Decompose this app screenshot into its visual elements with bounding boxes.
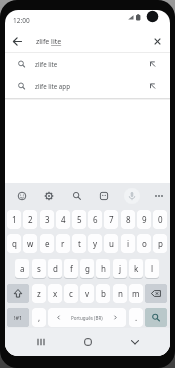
button[interactable] [7, 284, 29, 303]
staticText: a [20, 263, 25, 274]
staticText: n [118, 288, 123, 299]
button[interactable] [13, 187, 31, 205]
button[interactable]: v [80, 284, 94, 303]
staticText: 9 [142, 214, 147, 225]
staticText: i [127, 238, 130, 249]
staticText: f [70, 263, 73, 274]
button[interactable]: 4 [56, 210, 70, 229]
staticText: zlife lite app [35, 82, 70, 90]
button[interactable] [95, 187, 113, 205]
button[interactable] [40, 187, 58, 205]
button[interactable]: z [32, 284, 46, 303]
staticText: l [151, 263, 154, 274]
staticText: 3 [45, 214, 50, 225]
staticText: c [69, 288, 73, 299]
button[interactable] [68, 187, 86, 205]
staticText: t [78, 238, 81, 249]
button[interactable]: 1 [7, 210, 21, 229]
staticText: y [93, 238, 98, 249]
staticText: j [119, 263, 122, 274]
button[interactable]: !#1 [7, 308, 29, 327]
button[interactable]: b [96, 284, 110, 303]
button[interactable]: e [40, 234, 54, 253]
staticText: . [135, 312, 138, 323]
staticText: o [142, 238, 147, 249]
button[interactable]: o [137, 234, 151, 253]
button[interactable]: q [7, 234, 21, 253]
button[interactable]: p [153, 234, 167, 253]
button[interactable]: u [104, 234, 118, 253]
staticText: 0 [158, 214, 163, 225]
button[interactable]: g [80, 259, 94, 278]
button[interactable]: j [113, 259, 127, 278]
button[interactable]: . [129, 308, 143, 327]
button[interactable]: 5 [72, 210, 86, 229]
button[interactable]: 2 [23, 210, 37, 229]
staticText: e [45, 238, 50, 249]
button[interactable]: a [15, 259, 29, 278]
button[interactable]: h [96, 259, 110, 278]
button[interactable]: , [32, 308, 46, 327]
staticText: zlife lite [35, 60, 58, 68]
staticText: b [101, 288, 106, 299]
staticText: z [37, 288, 41, 299]
button[interactable] [145, 284, 167, 303]
button[interactable] [125, 332, 145, 352]
button[interactable]: 8 [121, 210, 135, 229]
button[interactable] [148, 32, 167, 51]
staticText: u [109, 238, 114, 249]
button[interactable]: 9 [137, 210, 151, 229]
staticText: w [27, 238, 34, 249]
button[interactable]: s [32, 259, 46, 278]
button[interactable] [150, 187, 168, 205]
button[interactable]: m [129, 284, 143, 303]
staticText: x [53, 288, 58, 299]
button[interactable] [78, 332, 98, 352]
button[interactable]: Português (BR) [48, 308, 126, 327]
staticText: s [37, 263, 41, 274]
button[interactable]: 7 [104, 210, 118, 229]
button[interactable]: x [48, 284, 62, 303]
staticText: 12:00 [13, 16, 30, 25]
button[interactable]: 6 [88, 210, 102, 229]
button[interactable]: w [23, 234, 37, 253]
staticText: d [53, 263, 58, 274]
button[interactable]: zlife lite [5, 53, 170, 76]
staticText: q [12, 238, 17, 249]
staticText: , [38, 312, 41, 323]
button[interactable]: f [64, 259, 78, 278]
button[interactable] [123, 187, 141, 205]
button[interactable] [145, 308, 167, 327]
button[interactable]: y [88, 234, 102, 253]
staticText: 1 [12, 214, 17, 225]
button[interactable]: zlife lite app [5, 75, 170, 98]
staticText: h [101, 263, 106, 274]
staticText: 8 [126, 214, 131, 225]
staticText: k [134, 263, 139, 274]
staticText: zlife lite [36, 37, 62, 47]
staticText: 6 [93, 214, 98, 225]
staticText: m [132, 288, 140, 299]
button[interactable] [31, 332, 51, 352]
staticText: g [85, 263, 90, 274]
staticText: Português (BR) [71, 315, 103, 321]
button[interactable]: k [129, 259, 143, 278]
button[interactable]: d [48, 259, 62, 278]
button[interactable] [8, 32, 27, 51]
button[interactable]: c [64, 284, 78, 303]
button[interactable]: l [145, 259, 159, 278]
staticText: 4 [61, 214, 66, 225]
staticText: 7 [109, 214, 114, 225]
button[interactable]: t [72, 234, 86, 253]
staticText: r [61, 238, 65, 249]
staticText: v [85, 288, 90, 299]
staticText: p [158, 238, 163, 249]
button[interactable]: n [113, 284, 127, 303]
button[interactable]: 0 [153, 210, 167, 229]
staticText: 5 [77, 214, 82, 225]
button[interactable]: 3 [40, 210, 54, 229]
button[interactable]: r [56, 234, 70, 253]
button[interactable]: i [121, 234, 135, 253]
staticText: !#1 [14, 314, 23, 321]
staticText: 2 [28, 214, 33, 225]
